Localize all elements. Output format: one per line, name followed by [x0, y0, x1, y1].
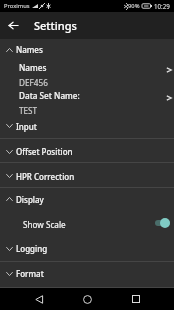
staticText: TEST — [19, 105, 38, 114]
button[interactable]: Logging — [0, 236, 174, 261]
staticText: 90% — [128, 2, 140, 10]
button[interactable]: Display — [0, 188, 174, 210]
staticText: Display — [16, 194, 44, 205]
button[interactable]: Names — [0, 39, 174, 58]
button[interactable]: Format — [0, 262, 174, 285]
staticText: Show Scale — [23, 219, 154, 230]
staticText: Names — [16, 44, 43, 55]
staticText: Offset Position — [16, 146, 73, 157]
button[interactable]: Back — [29, 289, 49, 309]
button[interactable]: Home — [77, 289, 97, 309]
button[interactable]: HPR Correction — [0, 163, 174, 187]
staticText: Logging — [16, 243, 48, 254]
staticText: Data Set Name: — [19, 90, 80, 101]
button[interactable]: Data Set Name: — [0, 86, 174, 114]
button[interactable]: Names — [0, 58, 174, 86]
button[interactable]: Show Scale — [0, 210, 174, 236]
button[interactable]: Recent apps — [126, 289, 146, 309]
staticText: DEF456 — [19, 77, 48, 86]
staticText: HPR Correction — [16, 171, 75, 182]
button[interactable]: Input — [0, 114, 174, 138]
staticText: Input — [16, 121, 37, 132]
staticText: Format — [16, 268, 44, 279]
staticText: 10:29 — [154, 2, 170, 10]
staticText: Proximus — [4, 2, 30, 10]
staticText: Names — [19, 62, 47, 73]
button[interactable]: Offset Position — [0, 139, 174, 162]
button[interactable]: Navigate up — [0, 12, 27, 39]
staticText: Settings — [34, 18, 77, 33]
